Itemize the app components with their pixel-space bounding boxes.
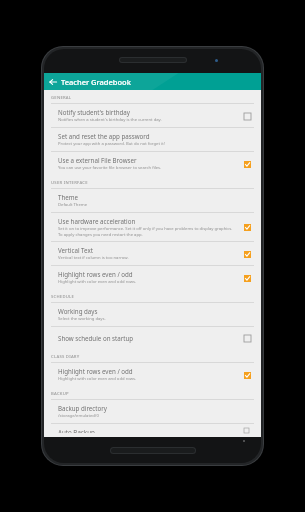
button[interactable]: Highlight rows even / odd (240, 368, 254, 382)
staticText: USER INTERFACE (51, 180, 88, 186)
staticText: Notify student's birthday (58, 108, 130, 116)
button[interactable]: Highlight rows even / odd (44, 363, 261, 386)
button[interactable]: Back (44, 73, 61, 90)
button[interactable]: Working days (44, 303, 261, 326)
button[interactable]: Use a external File Browser (44, 152, 261, 175)
button[interactable]: Use hardware acceleration (44, 213, 261, 241)
button[interactable]: Use a external File Browser (240, 157, 254, 171)
button[interactable]: Highlight rows even / odd (44, 266, 261, 289)
staticText: Show schedule on startup (58, 334, 134, 342)
button[interactable]: Notify student's birthday (44, 104, 261, 127)
button[interactable]: Auto Backup (240, 428, 254, 433)
staticText: Use a external File Browser (58, 156, 137, 164)
staticText: Teacher Gradebook (61, 77, 131, 87)
staticText: Vertical text if column is too narrow. (58, 255, 129, 261)
staticText: Auto Backup (58, 428, 95, 433)
button[interactable]: Set and reset the app password (44, 128, 261, 151)
staticText: You can use your favorite file browser t… (58, 165, 162, 171)
button[interactable]: Backup directory (44, 400, 261, 423)
staticText: Select the working days. (58, 316, 106, 322)
button[interactable]: Show schedule on startup (44, 327, 261, 349)
button[interactable]: Vertical Text (240, 247, 254, 261)
staticText: Highlight with color even and odd rows. (58, 376, 137, 382)
staticText: Highlight rows even / odd (58, 367, 133, 375)
staticText: Default Theme (58, 202, 88, 208)
staticText: Vertical Text (58, 246, 93, 254)
button[interactable]: Use hardware acceleration (240, 220, 254, 234)
staticText: Theme (58, 193, 79, 201)
button[interactable]: Highlight rows even / odd (240, 271, 254, 285)
staticText: Highlight with color even and odd rows. (58, 279, 137, 285)
staticText: Notifies when a student's birthday is th… (58, 117, 162, 123)
staticText: Set and reset the app password (58, 132, 150, 140)
button[interactable]: Theme (44, 189, 261, 212)
staticText: BACKUP (51, 391, 69, 397)
staticText: Protect your app with a password. But do… (58, 141, 165, 147)
staticText: Backup directory (58, 404, 107, 412)
staticText: Highlight rows even / odd (58, 270, 133, 278)
staticText: SCHEDULE (51, 294, 75, 300)
staticText: CLASS DIARY (51, 354, 80, 360)
staticText: Working days (58, 307, 98, 315)
button[interactable]: Notify student's birthday (240, 109, 254, 123)
staticText: GENERAL (51, 95, 72, 101)
button[interactable]: Vertical Text (44, 242, 261, 265)
button[interactable]: Show schedule on startup (240, 331, 254, 345)
staticText: Set it on to improve performance. Set it… (58, 226, 236, 237)
button[interactable]: Auto Backup (44, 424, 261, 437)
staticText: /storage/emulated/0 (58, 413, 99, 419)
staticText: Use hardware acceleration (58, 217, 136, 225)
